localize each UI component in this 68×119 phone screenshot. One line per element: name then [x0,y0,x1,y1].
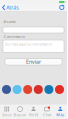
staticText: Inicio [2,112,11,117]
button[interactable]: Buscar [13,105,27,119]
staticText: Buscar [14,112,27,117]
button[interactable]: YouTube [55,85,64,94]
button[interactable]: Perfil [27,105,40,119]
button[interactable]: Google Plus [23,85,32,94]
staticText: Chat [43,112,51,117]
button[interactable]: LinkedIn [44,85,53,94]
staticText: Enviar [26,58,41,65]
staticText: Asunto [3,19,15,24]
button[interactable]: Enviar [5,58,62,65]
staticText: Más [56,112,64,117]
button[interactable]: Más [54,105,67,119]
button[interactable]: Chat [40,105,54,119]
staticText: Perfil [29,112,38,117]
button[interactable]: Facebook [2,85,11,94]
staticText: Comentario [3,34,24,39]
button[interactable]: Twitter [13,85,22,94]
button[interactable]: Inicio [0,105,13,119]
button[interactable]: Atrás [0,4,21,11]
staticText: Escriba aquí su comentario [4,41,51,46]
button[interactable]: Recargar [57,4,67,11]
staticText: Atrás [6,4,19,11]
button[interactable]: Pinterest [34,85,43,94]
